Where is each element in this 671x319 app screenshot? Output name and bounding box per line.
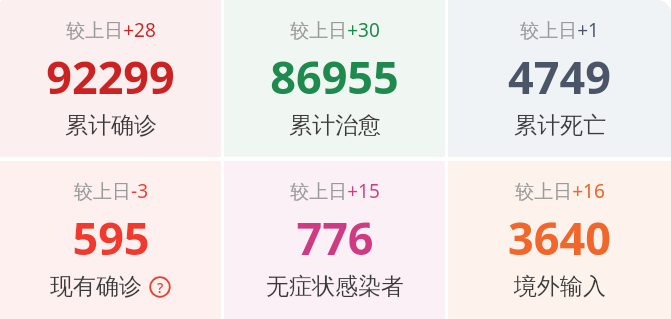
staticText: 较上日+28 — [66, 17, 156, 43]
staticText: 776 — [296, 207, 374, 268]
staticText: 较上日+15 — [290, 178, 380, 204]
button[interactable]: Help about current confirmed — [149, 276, 171, 298]
button[interactable]: 较上日+1 — [448, 0, 671, 157]
staticText: ? — [157, 278, 164, 297]
staticText: 较上日-3 — [74, 178, 148, 204]
staticText: 86955 — [270, 46, 399, 107]
button[interactable]: 较上日+15 — [224, 161, 445, 319]
staticText: 较上日+1 — [520, 17, 599, 43]
staticText: 较上日+30 — [290, 17, 380, 43]
staticText: 无症状感染者 — [266, 272, 404, 301]
staticText: 595 — [72, 207, 150, 268]
staticText: 累计确诊 — [65, 111, 157, 140]
staticText: 92299 — [46, 46, 175, 107]
staticText: 累计治愈 — [289, 111, 381, 140]
staticText: 境外输入 — [514, 272, 606, 301]
staticText: 3640 — [508, 207, 611, 268]
button[interactable]: 较上日-3 — [0, 161, 221, 319]
staticText: 较上日+16 — [515, 178, 605, 204]
staticText: 现有确诊 — [50, 272, 142, 301]
button[interactable]: 较上日+30 — [224, 0, 445, 157]
staticText: 累计死亡 — [514, 111, 606, 140]
button[interactable]: 较上日+28 — [0, 0, 221, 157]
staticText: 4749 — [508, 46, 611, 107]
button[interactable]: 较上日+16 — [448, 161, 671, 319]
